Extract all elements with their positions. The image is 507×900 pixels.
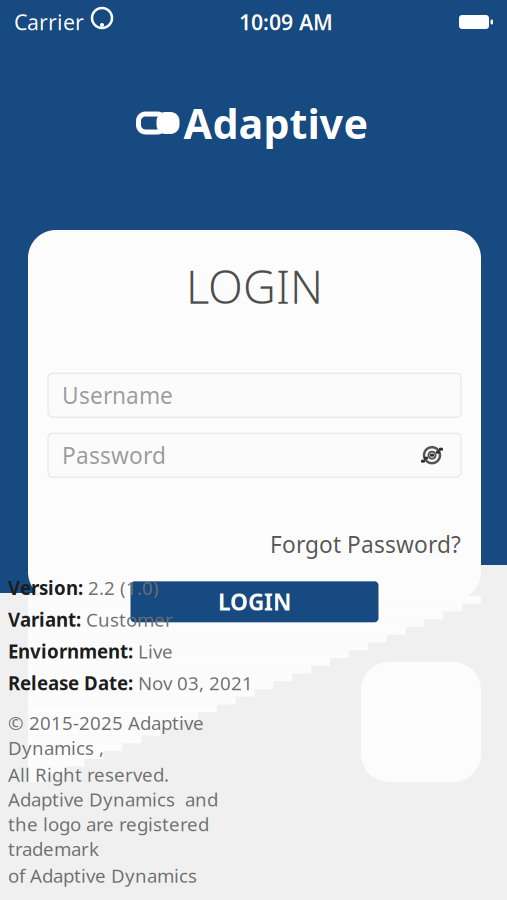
staticText: Username: [62, 380, 173, 410]
staticText: Variant:: [8, 607, 81, 632]
staticText: All Right reserved. Adaptive Dynamics an…: [8, 762, 218, 861]
staticText: Customer: [86, 607, 173, 632]
button[interactable]: Show password: [417, 443, 447, 467]
staticText: LOGIN: [218, 587, 291, 617]
staticText: Password: [62, 440, 166, 470]
staticText: Live: [138, 639, 173, 664]
staticText: Enviornment:: [8, 639, 133, 664]
staticText: Carrier: [14, 8, 84, 36]
button[interactable]: Forgot Password?: [270, 529, 461, 559]
staticText: 2.2 (1.0): [88, 575, 159, 600]
staticText: LOGIN: [186, 256, 323, 316]
staticText: of Adaptive Dynamics: [8, 863, 197, 888]
staticText: 10:09 AM: [239, 8, 333, 36]
staticText: Adaptive: [183, 96, 368, 150]
staticText: © 2015-2025 Adaptive Dynamics ,: [8, 710, 204, 760]
staticText: Nov 03, 2021: [138, 671, 253, 695]
staticText: Version:: [8, 575, 83, 600]
button[interactable]: LOGIN: [130, 581, 378, 622]
staticText: Release Date:: [8, 671, 133, 695]
staticText: Forgot Password?: [270, 529, 461, 559]
